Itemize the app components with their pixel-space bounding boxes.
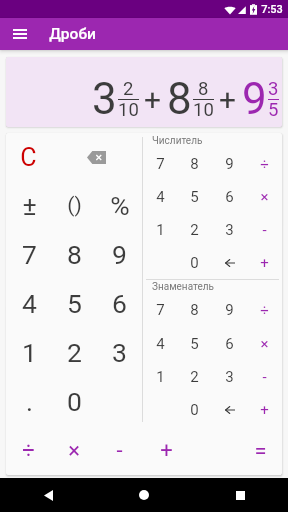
button[interactable]: 5 <box>177 180 212 213</box>
button[interactable]: 4 <box>6 279 52 328</box>
button[interactable]: % <box>97 181 142 230</box>
button[interactable]: × <box>247 180 282 213</box>
staticText: 6 <box>225 188 234 206</box>
staticText: 7:53 <box>261 3 283 16</box>
staticText: = <box>254 438 267 464</box>
button[interactable]: 5 <box>52 279 97 328</box>
button[interactable]: 3 <box>97 328 142 377</box>
button[interactable]: - <box>247 360 282 393</box>
button[interactable]: - <box>97 426 142 475</box>
staticText: + <box>160 438 173 464</box>
button[interactable]: ÷ <box>247 293 282 327</box>
button[interactable]: 3 <box>212 213 247 246</box>
button[interactable]: Open navigation menu <box>0 18 40 50</box>
staticText: 2 <box>123 78 134 100</box>
staticText: ± <box>22 190 37 221</box>
button[interactable]: + <box>247 246 282 279</box>
staticText: + <box>260 254 269 272</box>
button[interactable]: ÷ <box>247 147 282 180</box>
button[interactable]: 8 <box>177 293 212 327</box>
button[interactable]: . <box>6 377 52 426</box>
button[interactable]: 6 <box>212 180 247 213</box>
staticText: 1 <box>22 337 37 368</box>
staticText: () <box>67 193 82 218</box>
staticText: 0 <box>67 386 82 417</box>
button[interactable]: 2 <box>177 213 212 246</box>
staticText: 10 <box>193 99 214 121</box>
button[interactable]: Backspace <box>51 133 142 181</box>
button[interactable]: () <box>52 181 97 230</box>
button[interactable]: 9 <box>212 147 247 180</box>
staticText: 1 <box>156 221 165 239</box>
staticText: Знаменатель <box>152 281 214 293</box>
staticText: - <box>262 368 267 386</box>
button[interactable]: = <box>238 426 282 475</box>
staticText: 8 <box>167 73 192 125</box>
button[interactable]: 4 <box>143 327 177 360</box>
button[interactable]: ÷ <box>6 426 51 475</box>
button[interactable]: 0 <box>177 393 212 426</box>
staticText: ÷ <box>260 155 269 173</box>
staticText: 7 <box>156 155 165 173</box>
staticText: - <box>262 221 267 239</box>
staticText: 8 <box>198 78 209 100</box>
staticText: 2 <box>67 337 82 368</box>
button[interactable]: 6 <box>212 327 247 360</box>
staticText: + <box>144 82 162 117</box>
button[interactable]: 8 <box>52 230 97 279</box>
button[interactable]: 2 <box>52 328 97 377</box>
staticText: × <box>260 188 269 206</box>
staticText: 4 <box>156 335 165 353</box>
staticText: Числитель <box>152 135 203 147</box>
button[interactable]: 7 <box>143 147 177 180</box>
staticText: 5 <box>67 288 82 319</box>
button[interactable]: C <box>6 133 51 181</box>
button[interactable]: Backspace <box>212 393 247 426</box>
staticText: 7 <box>156 301 165 319</box>
button[interactable]: Home <box>96 478 192 512</box>
button[interactable]: - <box>247 213 282 246</box>
button[interactable]: 2 <box>177 360 212 393</box>
staticText: 3 <box>112 337 127 368</box>
button[interactable]: 7 <box>143 293 177 327</box>
button[interactable]: Backspace <box>212 246 247 279</box>
staticText: × <box>260 335 269 353</box>
button[interactable]: × <box>247 327 282 360</box>
button[interactable]: 0 <box>52 377 97 426</box>
button[interactable]: 1 <box>143 360 177 393</box>
button[interactable]: 7 <box>6 230 52 279</box>
staticText: 1 <box>156 368 165 386</box>
button[interactable]: 6 <box>97 279 142 328</box>
staticText: 5 <box>190 335 199 353</box>
staticText: 5 <box>190 188 199 206</box>
button[interactable]: Back <box>0 478 96 512</box>
button[interactable]: 4 <box>143 180 177 213</box>
staticText: 4 <box>156 188 165 206</box>
staticText: 2 <box>190 368 199 386</box>
button[interactable]: 9 <box>97 230 142 279</box>
button[interactable]: 5 <box>177 327 212 360</box>
staticText: × <box>68 438 80 464</box>
staticText: 7 <box>22 239 37 270</box>
button[interactable]: 0 <box>177 246 212 279</box>
button[interactable]: 1 <box>143 213 177 246</box>
button[interactable]: + <box>247 393 282 426</box>
button[interactable]: ± <box>6 181 52 230</box>
button[interactable]: 8 <box>177 147 212 180</box>
staticText: 0 <box>190 254 199 272</box>
button[interactable]: 1 <box>6 328 52 377</box>
staticText: 4 <box>22 288 37 319</box>
button[interactable]: Recent apps <box>192 478 288 512</box>
staticText: 9 <box>112 239 127 270</box>
staticText: 10 <box>118 99 139 121</box>
button[interactable]: × <box>51 426 97 475</box>
button[interactable]: + <box>142 426 190 475</box>
staticText: 5 <box>268 99 279 121</box>
button[interactable]: 3 <box>212 360 247 393</box>
staticText: ÷ <box>260 301 269 319</box>
button[interactable]: 9 <box>212 293 247 327</box>
staticText: 2 <box>190 221 199 239</box>
